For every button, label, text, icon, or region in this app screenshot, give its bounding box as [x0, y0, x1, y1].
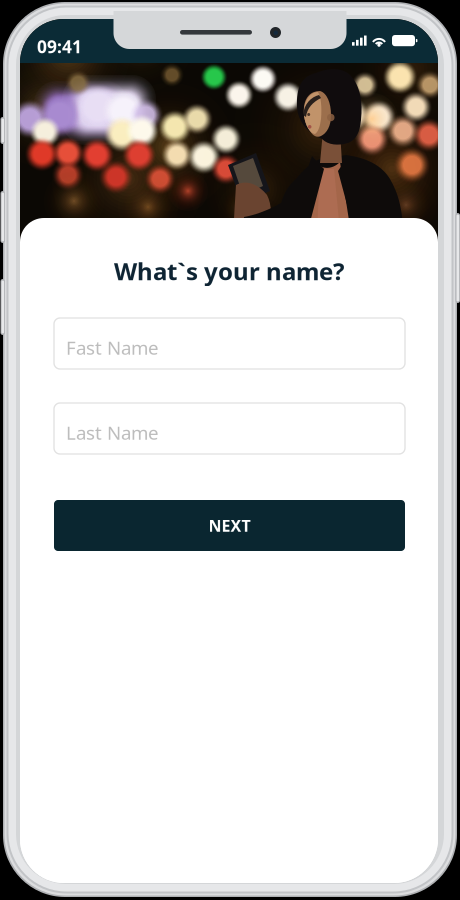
staticText: What`s your name? — [114, 255, 344, 287]
button[interactable]: NEXT — [54, 500, 405, 551]
staticText: 09:41 — [37, 35, 82, 58]
staticText: Last Name — [66, 420, 159, 445]
staticText: NEXT — [208, 515, 250, 536]
button[interactable]: Last Name — [54, 403, 405, 454]
button[interactable]: Fast Name — [54, 318, 405, 369]
staticText: Fast Name — [66, 335, 159, 360]
